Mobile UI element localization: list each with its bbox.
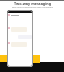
staticText: Two-way messaging xyxy=(14,1,51,6)
staticText: Real-time conversations with customers xyxy=(12,6,53,9)
